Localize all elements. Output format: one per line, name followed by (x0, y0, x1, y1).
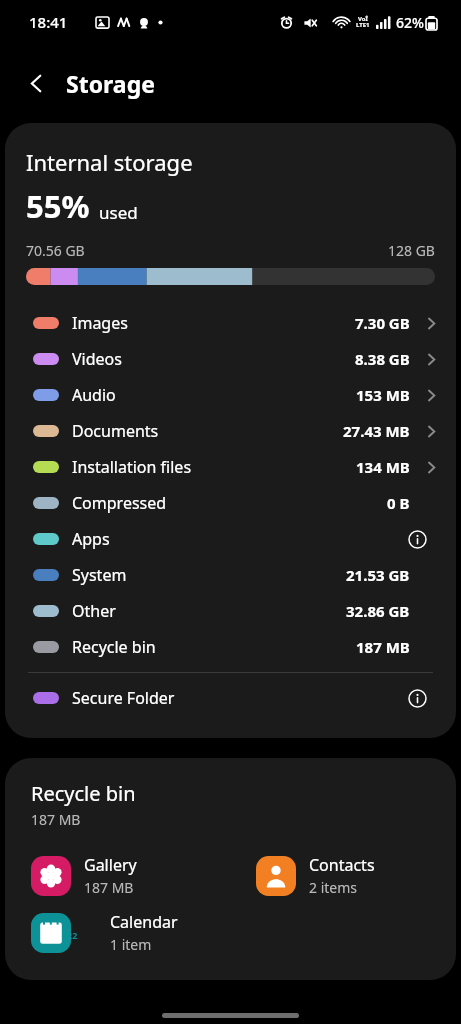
other: More information about Secure Folder (404, 685, 430, 711)
staticText: 7.30 GB (355, 313, 410, 333)
staticText: LTE1 (356, 21, 370, 29)
staticText: Apps (72, 528, 110, 550)
staticText: 55% (26, 185, 90, 227)
staticText: 153 MB (356, 385, 410, 405)
staticText: Contacts (309, 854, 375, 876)
staticText: 32.86 GB (346, 601, 410, 621)
staticText: Compressed (72, 492, 167, 514)
staticText: Videos (72, 348, 122, 370)
button[interactable]: 22 (31, 911, 224, 954)
staticText: VoÎ (358, 15, 368, 23)
button[interactable]: Installation files (5, 449, 456, 485)
staticText: 187 MB (84, 878, 134, 897)
staticText: 1 item (110, 935, 152, 954)
staticText: 187 MB (31, 810, 81, 829)
button[interactable]: Videos (5, 341, 456, 377)
staticText: Gallery (84, 854, 137, 876)
staticText: 62% (396, 13, 424, 32)
staticText: System (72, 564, 127, 586)
button[interactable]: Secure Folder (5, 680, 456, 716)
staticText: 21.53 GB (346, 565, 410, 585)
button[interactable]: Compressed (5, 485, 456, 521)
staticText: Internal storage (26, 147, 193, 177)
staticText: 22 (67, 929, 78, 941)
button[interactable]: System (5, 557, 456, 593)
staticText: Recycle bin (31, 780, 136, 807)
button[interactable]: Other (5, 593, 456, 629)
button[interactable]: Contacts (256, 854, 450, 897)
button[interactable]: Recycle bin (5, 629, 456, 665)
staticText: Documents (72, 420, 159, 442)
staticText: 0 B (387, 493, 410, 513)
button[interactable]: Documents (5, 413, 456, 449)
staticText: 187 MB (356, 637, 410, 657)
staticText: used (99, 201, 138, 224)
button[interactable]: Back (16, 63, 56, 103)
staticText: 27.43 MB (343, 421, 410, 441)
staticText: Other (72, 600, 116, 622)
staticText: Audio (72, 384, 116, 406)
button[interactable]: Images (5, 305, 456, 341)
staticText: 2 items (309, 878, 358, 897)
other: More information about Apps (404, 526, 430, 552)
staticText: 134 MB (356, 457, 410, 477)
staticText: 128 GB (388, 241, 435, 260)
button[interactable]: Audio (5, 377, 456, 413)
button[interactable]: Apps (5, 521, 456, 557)
staticText: 18:41 (29, 12, 68, 32)
staticText: Images (72, 312, 128, 334)
staticText: Calendar (110, 911, 178, 933)
staticText: Installation files (72, 456, 192, 478)
staticText: Storage (66, 68, 155, 99)
staticText: Secure Folder (72, 687, 175, 709)
staticText: 70.56 GB (26, 241, 85, 260)
staticText: Recycle bin (72, 636, 156, 658)
staticText: 8.38 GB (355, 349, 410, 369)
button[interactable]: Gallery (31, 854, 224, 897)
